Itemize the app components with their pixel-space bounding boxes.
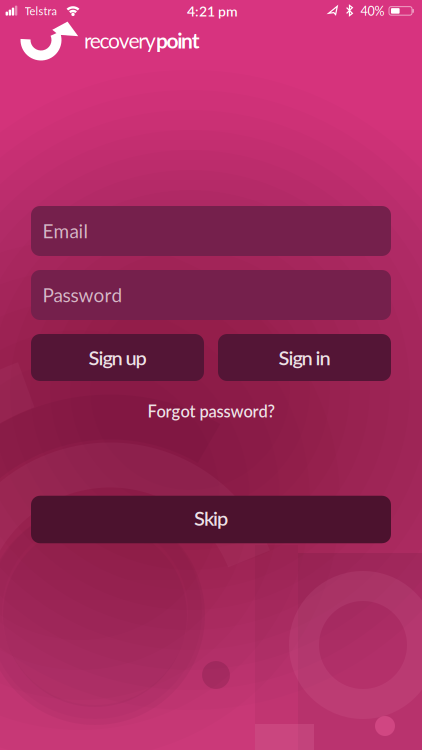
- staticText: Telstra: [24, 4, 56, 18]
- staticText: point: [156, 28, 200, 53]
- button[interactable]: Sign in: [218, 334, 391, 381]
- staticText: Forgot password?: [147, 401, 274, 421]
- staticText: Email: [42, 220, 87, 242]
- button[interactable]: Forgot password?: [147, 401, 274, 421]
- staticText: Password: [42, 284, 122, 306]
- staticText: 4:21 pm: [187, 3, 238, 19]
- button[interactable]: Email: [31, 206, 391, 256]
- button[interactable]: Sign up: [31, 334, 204, 381]
- staticText: 40%: [360, 3, 384, 18]
- staticText: Sign up: [88, 345, 146, 369]
- staticText: Skip: [194, 506, 228, 530]
- staticText: recovery: [84, 28, 156, 53]
- staticText: Sign in: [278, 345, 330, 369]
- button[interactable]: Skip: [31, 496, 391, 543]
- button[interactable]: Password: [31, 270, 391, 320]
